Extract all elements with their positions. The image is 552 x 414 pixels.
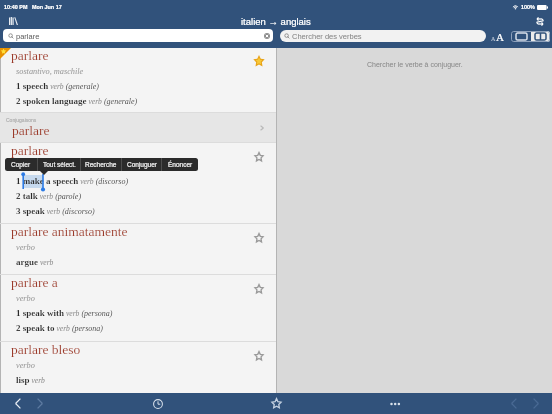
staticText: 100% — [521, 4, 535, 10]
staticText: Recherche — [85, 161, 117, 168]
staticText: Chercher des verbes — [292, 32, 362, 40]
staticText: parlare — [11, 143, 49, 158]
button[interactable]: Tout sélect. — [38, 158, 80, 171]
staticText: verbo — [16, 294, 35, 303]
staticText: 10:40 PM — [4, 4, 28, 10]
staticText: 1 speak with verb (persona) — [16, 308, 113, 318]
staticText: 1 make a speech verb (discorso) — [16, 176, 129, 186]
staticText: verbo — [16, 243, 35, 252]
staticText: Chercher le verbe à conjuguer. — [367, 61, 463, 69]
button[interactable]: Swap languages — [532, 13, 548, 29]
staticText: parlare animatamente — [11, 224, 128, 239]
staticText: italien → anglais — [241, 16, 311, 27]
staticText: verbo — [16, 361, 35, 370]
staticText: Copier — [11, 161, 31, 168]
staticText: Conjuguer — [127, 161, 157, 168]
staticText: parlare bleso — [11, 342, 81, 357]
button[interactable]: History — [151, 393, 165, 414]
button[interactable]: parlare — [0, 48, 276, 112]
button[interactable]: Conjugaisons — [0, 113, 276, 142]
staticText: parlare — [12, 123, 50, 138]
button[interactable]: parlare a — [0, 275, 276, 341]
staticText: A — [496, 31, 504, 43]
staticText: 2 talk verb (parole) — [16, 191, 82, 201]
staticText: 1 speech verb (generale) — [16, 81, 99, 91]
button[interactable]: parlare bleso — [0, 342, 276, 392]
button[interactable]: Split pane — [531, 31, 550, 42]
button[interactable]: parlare — [0, 143, 276, 223]
staticText: 2 speak to verb (persona) — [16, 323, 104, 333]
button[interactable]: More — [388, 393, 402, 414]
staticText: Tout sélect. — [43, 161, 76, 168]
staticText: lisp verb — [16, 375, 45, 385]
button[interactable]: Chercher des verbes — [280, 30, 486, 42]
button[interactable]: Back — [11, 393, 25, 414]
staticText: Conjugaisons — [6, 117, 37, 123]
staticText: sostantivo, maschile — [16, 67, 84, 76]
button[interactable]: Forward — [33, 393, 47, 414]
staticText: parlare a — [11, 275, 58, 290]
staticText: argue verb — [16, 257, 54, 267]
button[interactable]: Next page — [529, 393, 543, 414]
staticText: Énoncer — [168, 161, 193, 168]
button[interactable]: Library — [5, 13, 21, 29]
button[interactable]: Énoncer — [162, 158, 198, 171]
staticText: Mon Jun 17 — [32, 4, 62, 10]
staticText: A — [491, 36, 496, 43]
button[interactable]: Recherche — [81, 158, 121, 171]
staticText: 2 spoken language verb (generale) — [16, 96, 138, 106]
button[interactable]: Previous page — [507, 393, 521, 414]
staticText: parlare — [11, 48, 49, 63]
button[interactable]: Copier — [5, 158, 37, 171]
staticText: parlare — [16, 32, 40, 40]
button[interactable]: Favorites — [269, 393, 283, 414]
staticText: 3 speak verb (discorso) — [16, 206, 95, 216]
button[interactable]: parlare animatamente — [0, 224, 276, 274]
button[interactable]: Text size — [491, 29, 507, 43]
button[interactable]: parlare — [3, 29, 273, 42]
button[interactable]: Conjuguer — [122, 158, 161, 171]
button[interactable]: Single pane — [511, 31, 531, 42]
